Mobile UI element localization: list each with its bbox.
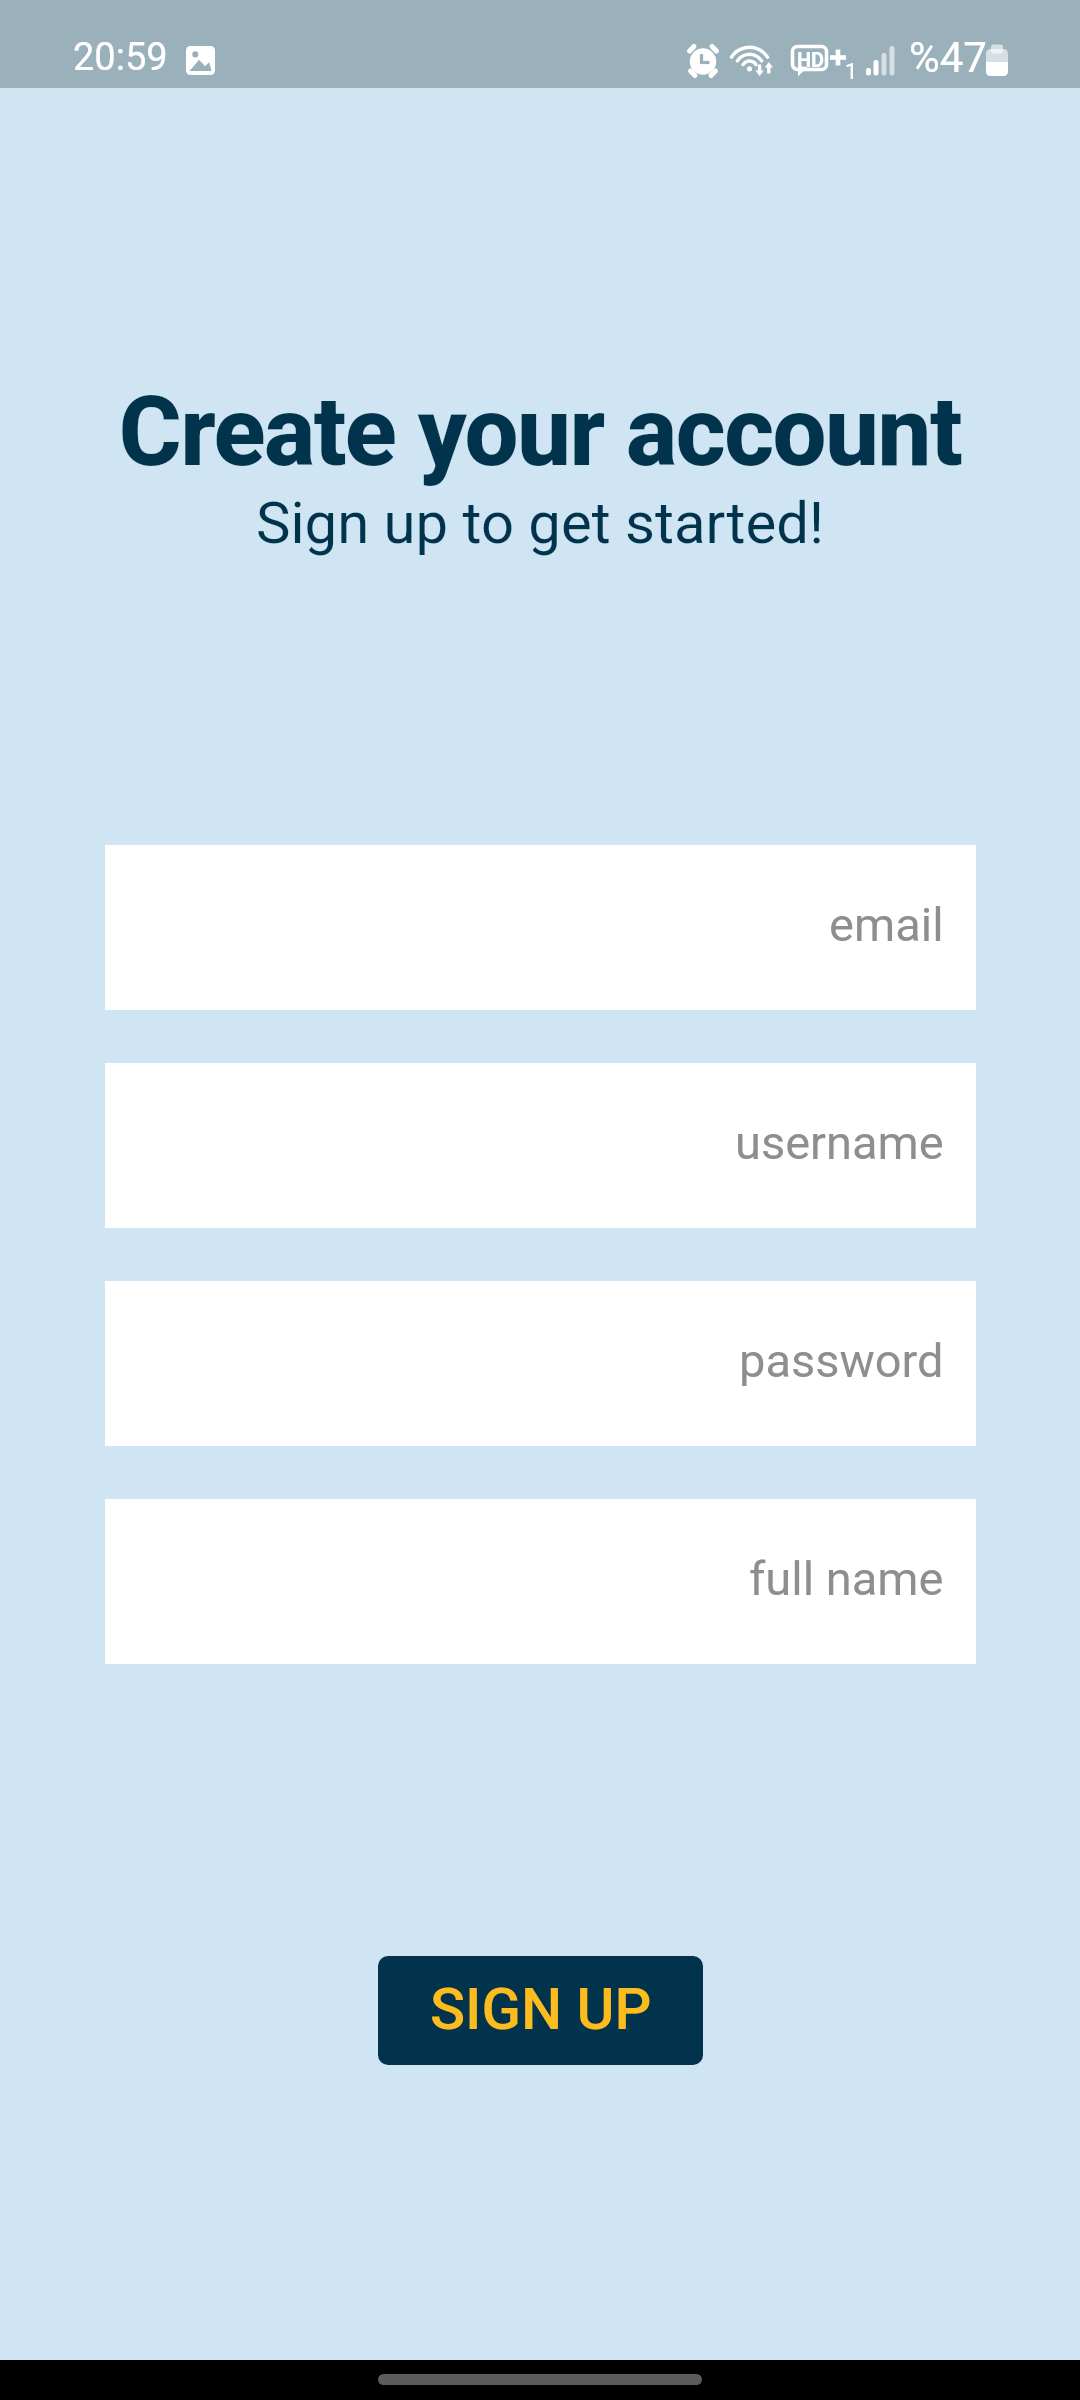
button[interactable]: password [105,1281,976,1446]
button[interactable]: username [105,1063,976,1228]
staticText: 1 [845,59,858,85]
button[interactable]: full name [105,1499,976,1664]
staticText: email [829,897,944,952]
button[interactable]: Home [378,2374,702,2385]
staticText: username [735,1115,944,1170]
staticText: Create your account [0,376,1080,489]
staticText: full name [749,1551,944,1606]
button[interactable]: SIGN UP [378,1956,703,2065]
staticText: password [739,1333,944,1388]
button[interactable]: email [105,845,976,1010]
staticText: HD [797,48,825,71]
staticText: Sign up to get started! [0,489,1080,557]
staticText: 20:59 [73,35,168,80]
staticText: %47 [909,33,987,82]
staticText: SIGN UP [430,1975,652,2043]
